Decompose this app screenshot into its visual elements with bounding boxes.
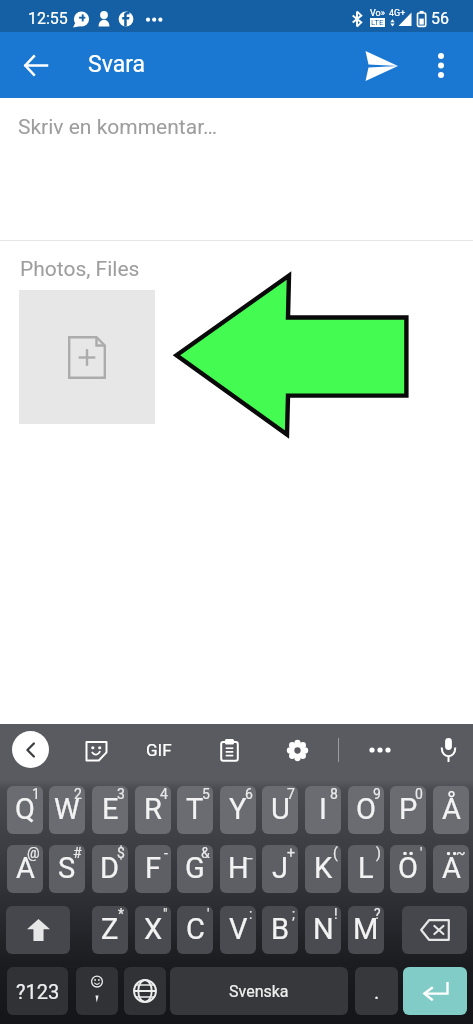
staticText: T xyxy=(186,792,204,826)
button[interactable]: X xyxy=(135,906,171,954)
staticText: & xyxy=(201,845,210,861)
staticText: 4 xyxy=(160,786,168,802)
button[interactable]: Switch language xyxy=(124,967,166,1015)
button[interactable]: R xyxy=(135,786,171,834)
staticText: - xyxy=(164,845,168,861)
staticText: Ö xyxy=(398,851,418,885)
staticText: P xyxy=(399,792,418,826)
button[interactable]: T xyxy=(177,786,213,834)
button[interactable]: Settings xyxy=(279,732,315,768)
button[interactable]: O xyxy=(348,786,384,834)
button[interactable]: Ö xyxy=(390,845,426,893)
staticText: GIF xyxy=(146,740,172,760)
button[interactable]: J xyxy=(262,845,298,893)
staticText: E xyxy=(102,792,119,826)
staticText: J xyxy=(272,851,289,885)
staticText: 9 xyxy=(373,786,381,802)
button[interactable]: Close toolbar xyxy=(12,731,49,768)
staticText: V xyxy=(229,912,248,946)
staticText: Ä xyxy=(442,851,461,885)
button[interactable]: More options xyxy=(362,732,398,768)
staticText: ; xyxy=(292,906,295,922)
button[interactable]: I xyxy=(305,786,341,834)
staticText: ) xyxy=(376,845,381,861)
staticText: K xyxy=(314,851,333,885)
button[interactable]: Å xyxy=(433,786,469,834)
button[interactable]: V xyxy=(220,906,256,954)
button[interactable]: Clipboard xyxy=(211,732,247,768)
button[interactable]: P xyxy=(390,786,426,834)
button[interactable]: S xyxy=(49,845,85,893)
staticText: ~ xyxy=(456,845,466,861)
button[interactable]: Svenska xyxy=(170,967,348,1015)
staticText: L xyxy=(358,851,374,885)
staticText: S xyxy=(58,851,76,885)
button[interactable]: More options xyxy=(420,41,462,89)
button[interactable]: Back xyxy=(11,41,59,89)
staticText: Q xyxy=(15,792,35,826)
button[interactable]: GIF xyxy=(138,732,180,768)
button[interactable]: Add photo or file xyxy=(19,290,155,424)
staticText: ' xyxy=(420,845,423,861)
staticText: 5 xyxy=(202,786,210,802)
staticText: Å xyxy=(442,792,461,826)
button[interactable]: B xyxy=(262,906,298,954)
staticText: F xyxy=(145,851,162,885)
button[interactable]: Voice input xyxy=(430,732,466,768)
staticText: Skriv en kommentar… xyxy=(18,115,218,140)
button[interactable]: F xyxy=(135,845,171,893)
button[interactable]: A xyxy=(7,845,43,893)
staticText: . xyxy=(374,980,380,1003)
staticText: * xyxy=(118,906,125,922)
staticText: Svenska xyxy=(229,982,289,1001)
button[interactable]: Y xyxy=(220,786,256,834)
button[interactable]: Z xyxy=(92,906,128,954)
staticText: LTE xyxy=(371,18,384,27)
staticText: 2 xyxy=(74,786,82,802)
staticText: 12:55 xyxy=(28,9,68,28)
staticText: _ xyxy=(246,845,253,861)
button[interactable]: G xyxy=(177,845,213,893)
button[interactable]: Shift xyxy=(6,906,70,954)
staticText: 56 xyxy=(431,9,449,28)
button[interactable]: Send xyxy=(357,42,405,90)
button[interactable]: U xyxy=(262,786,298,834)
button[interactable]: H xyxy=(220,845,256,893)
staticText: @ xyxy=(27,845,40,861)
staticText: U xyxy=(271,792,290,826)
staticText: ?123 xyxy=(16,980,60,1003)
button[interactable]: Q xyxy=(7,786,43,834)
button[interactable]: E xyxy=(92,786,128,834)
button[interactable]: C xyxy=(177,906,213,954)
button[interactable]: W xyxy=(49,786,85,834)
button[interactable]: L xyxy=(348,845,384,893)
button[interactable]: Emoji xyxy=(76,967,118,1015)
staticText: 8 xyxy=(330,786,338,802)
button[interactable]: M xyxy=(348,906,384,954)
staticText: 3 xyxy=(117,786,125,802)
button[interactable]: K xyxy=(305,845,341,893)
button[interactable]: Skriv en kommentar… xyxy=(0,98,473,240)
button[interactable]: Stickers xyxy=(78,732,114,768)
staticText: X xyxy=(144,912,163,946)
button[interactable]: ?123 xyxy=(7,967,68,1015)
button[interactable]: Ä xyxy=(433,845,469,893)
staticText: Svara xyxy=(88,51,145,78)
staticText: # xyxy=(73,845,82,861)
button[interactable]: Enter xyxy=(403,967,467,1015)
button[interactable]: Backspace xyxy=(402,906,467,954)
staticText: : xyxy=(249,906,253,922)
button[interactable]: . xyxy=(355,967,398,1015)
staticText: 0 xyxy=(415,786,423,802)
staticText: G xyxy=(185,851,205,885)
staticText: ! xyxy=(334,906,338,922)
staticText: M xyxy=(353,912,379,946)
staticText: Photos, Files xyxy=(20,257,140,282)
button[interactable]: D xyxy=(92,845,128,893)
staticText: N xyxy=(313,912,334,946)
button[interactable]: N xyxy=(305,906,341,954)
staticText: I xyxy=(319,792,327,826)
staticText: C xyxy=(186,912,205,946)
staticText: B xyxy=(271,912,290,946)
staticText: 7 xyxy=(287,786,295,802)
